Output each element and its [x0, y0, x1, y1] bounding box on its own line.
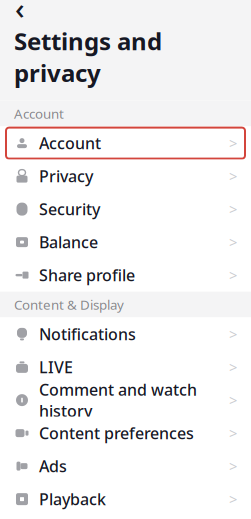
button[interactable]: Content preferences: [0, 417, 251, 450]
staticText: Notifications: [39, 323, 136, 345]
staticText: >: [229, 232, 237, 252]
staticText: ‹: [15, 0, 25, 27]
button[interactable]: Account: [0, 127, 251, 160]
button[interactable]: Share profile: [0, 259, 251, 292]
button[interactable]: Playback: [0, 483, 251, 516]
staticText: >: [229, 489, 237, 509]
staticText: >: [229, 324, 237, 344]
staticText: Share profile: [39, 264, 135, 286]
staticText: Privacy: [39, 165, 93, 187]
staticText: >: [229, 390, 237, 410]
button[interactable]: Security: [0, 193, 251, 226]
staticText: >: [229, 456, 237, 476]
staticText: Account: [39, 132, 101, 154]
staticText: Balance: [39, 231, 98, 253]
button[interactable]: LIVE: [0, 351, 251, 384]
staticText: >: [229, 199, 237, 219]
button[interactable]: Comment and watch history: [0, 384, 251, 417]
staticText: Security: [39, 198, 100, 220]
staticText: >: [229, 357, 237, 377]
button[interactable]: Ads: [0, 450, 251, 483]
staticText: Content preferences: [39, 422, 194, 444]
staticText: >: [229, 265, 237, 285]
staticText: Account: [14, 105, 64, 122]
staticText: Comment and watch history: [39, 379, 197, 421]
button[interactable]: Balance: [0, 226, 251, 259]
button[interactable]: Notifications: [0, 318, 251, 351]
staticText: >: [229, 133, 237, 153]
staticText: >: [229, 423, 237, 443]
button[interactable]: Back: [8, 0, 32, 19]
staticText: >: [229, 166, 237, 186]
staticText: Content & Display: [14, 296, 124, 313]
staticText: Ads: [39, 455, 67, 477]
button[interactable]: Privacy: [0, 160, 251, 193]
staticText: LIVE: [39, 356, 73, 378]
staticText: Settings and privacy: [14, 25, 162, 89]
staticText: Playback: [39, 488, 106, 510]
